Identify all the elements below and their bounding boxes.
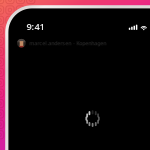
button[interactable]: marcel.andersen · Kopenhagen <box>17 39 117 48</box>
staticText: marcel.andersen · Kopenhagen <box>29 40 106 47</box>
staticText: 9:41 <box>26 20 44 32</box>
